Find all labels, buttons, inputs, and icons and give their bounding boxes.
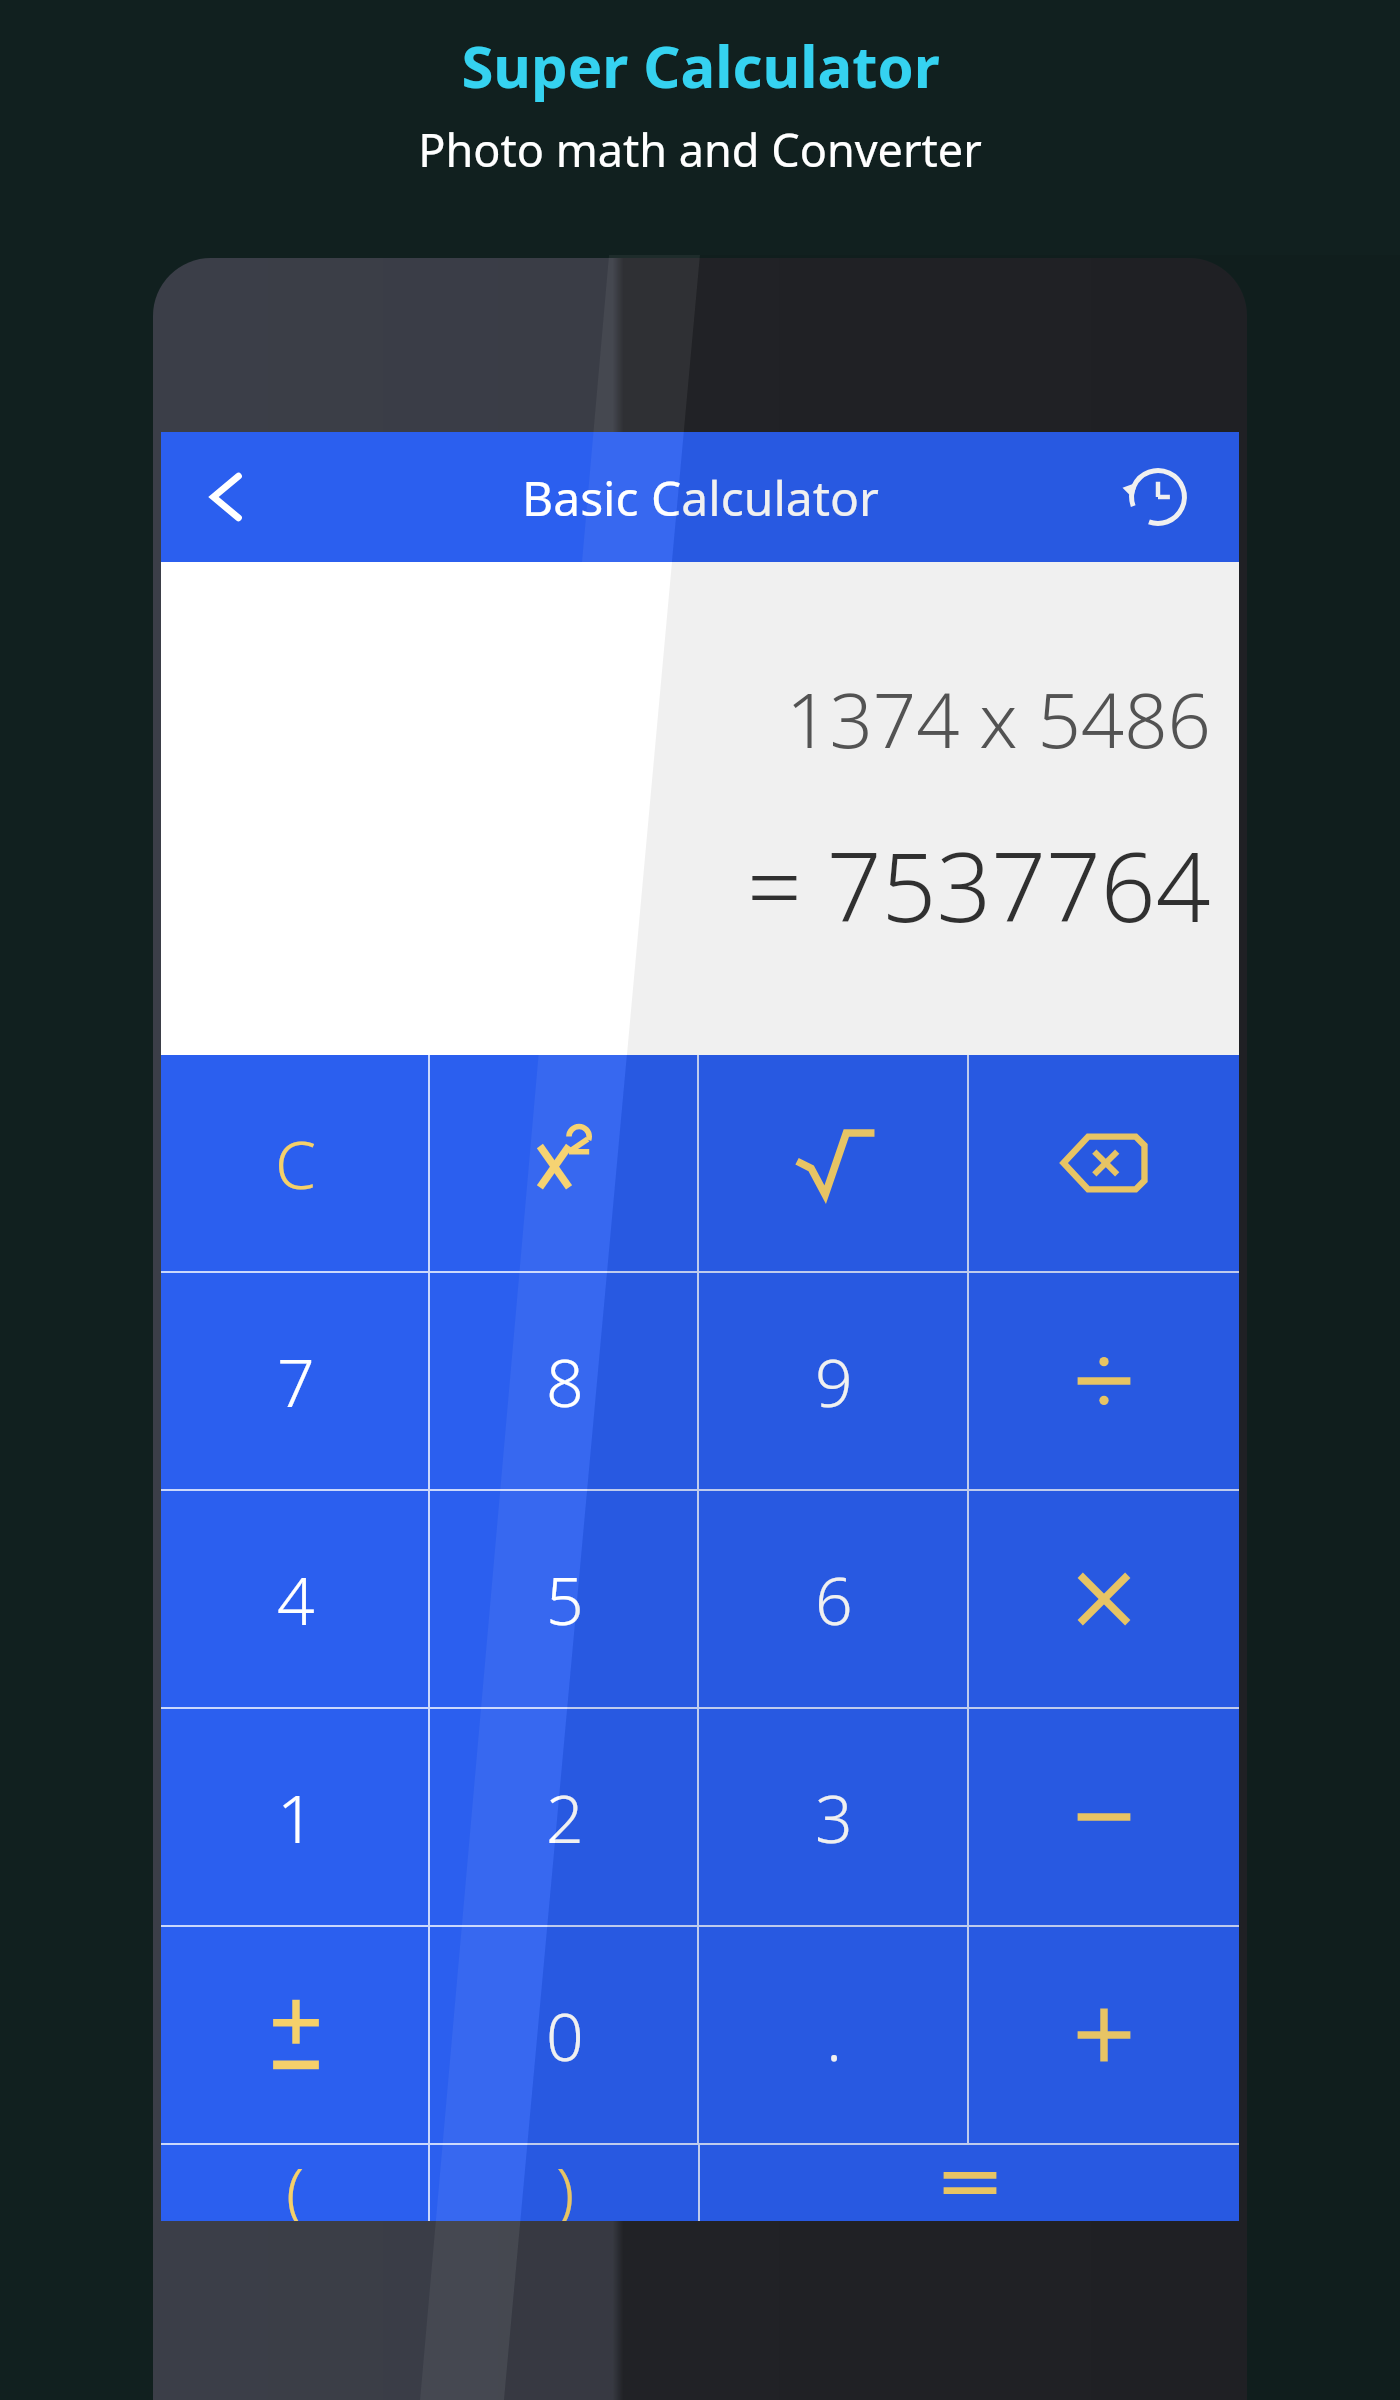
staticText: = 7537764 <box>747 819 1211 950</box>
button[interactable]: 9 <box>699 1273 969 1489</box>
button[interactable]: Plus minus <box>161 1927 430 2143</box>
button[interactable]: 6 <box>699 1491 969 1707</box>
staticText: 1374 x 5486 <box>786 667 1211 771</box>
button[interactable]: Backspace <box>969 1055 1239 1271</box>
button[interactable]: Multiply <box>969 1491 1239 1707</box>
staticText: 0 <box>546 1990 584 2080</box>
button[interactable]: C <box>161 1055 430 1271</box>
staticText: . <box>826 1990 843 2080</box>
staticText: ( <box>286 2145 305 2221</box>
staticText: C <box>275 1118 317 1208</box>
button[interactable]: Minus <box>969 1709 1239 1925</box>
button[interactable]: History <box>1103 442 1213 552</box>
staticText: ) <box>556 2145 575 2221</box>
staticText: 8 <box>546 1336 584 1426</box>
button[interactable]: Back <box>171 442 281 552</box>
button[interactable]: 7 <box>161 1273 430 1489</box>
staticText: 5 <box>546 1554 584 1644</box>
staticText: 7 <box>277 1336 315 1426</box>
staticText: 6 <box>815 1554 853 1644</box>
button[interactable]: Equals <box>700 2145 1239 2221</box>
button[interactable]: Divide <box>969 1273 1239 1489</box>
button[interactable]: ( <box>161 2145 430 2221</box>
staticText: 9 <box>815 1336 853 1426</box>
button[interactable]: 2 <box>430 1709 699 1925</box>
staticText: Super Calculator <box>461 26 940 105</box>
staticText: 1 <box>277 1772 315 1862</box>
button[interactable]: ) <box>430 2145 700 2221</box>
staticText: Photo math and Converter <box>418 119 982 180</box>
button[interactable]: Square <box>430 1055 699 1271</box>
button[interactable]: 3 <box>699 1709 969 1925</box>
button[interactable]: 5 <box>430 1491 699 1707</box>
button[interactable]: . <box>699 1927 969 2143</box>
staticText: 3 <box>815 1772 853 1862</box>
staticText: 2 <box>546 1772 584 1862</box>
button[interactable]: 0 <box>430 1927 699 2143</box>
button[interactable]: 1 <box>161 1709 430 1925</box>
staticText: Basic Calculator <box>522 465 879 530</box>
button[interactable]: 4 <box>161 1491 430 1707</box>
button[interactable]: Plus <box>969 1927 1239 2143</box>
button[interactable]: Square root <box>699 1055 969 1271</box>
staticText: 4 <box>277 1554 315 1644</box>
button[interactable]: 8 <box>430 1273 699 1489</box>
